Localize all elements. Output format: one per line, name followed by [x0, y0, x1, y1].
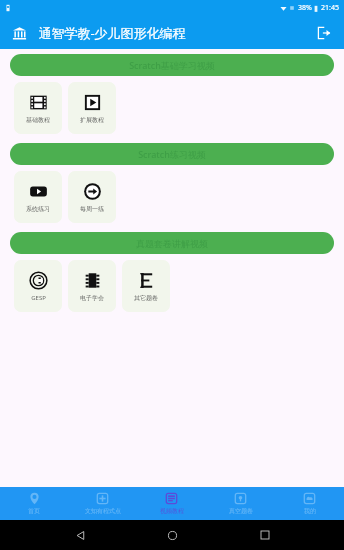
- staticText: 38%: [298, 3, 312, 13]
- staticText: 真题套卷讲解视频: [136, 238, 208, 249]
- button[interactable]: Recents: [252, 522, 278, 548]
- staticText: Scratch基础学习视频: [129, 59, 215, 71]
- staticText: 通智学教-少儿图形化编程: [38, 24, 186, 42]
- button[interactable]: Scratch练习视频: [10, 143, 334, 165]
- staticText: 系统练习: [26, 205, 50, 213]
- staticText: 真空题卷: [229, 507, 253, 515]
- staticText: 我的: [304, 507, 316, 515]
- staticText: Scratch练习视频: [138, 148, 206, 160]
- button[interactable]: 文知有程式点: [68, 492, 137, 515]
- button[interactable]: 我的: [275, 492, 344, 515]
- staticText: 每周一练: [80, 205, 104, 213]
- staticText: GESP: [31, 294, 46, 302]
- button[interactable]: 每周一练: [68, 171, 116, 223]
- button[interactable]: Menu: [8, 22, 30, 44]
- button[interactable]: 电子学会: [68, 260, 116, 312]
- staticText: 其它题卷: [134, 294, 158, 302]
- button[interactable]: 视频教程: [137, 492, 206, 515]
- staticText: 21:45: [321, 3, 339, 13]
- button[interactable]: 真题套卷讲解视频: [10, 232, 334, 254]
- button[interactable]: GESP: [14, 260, 62, 312]
- button[interactable]: 其它题卷: [122, 260, 170, 312]
- button[interactable]: Scratch基础学习视频: [10, 54, 334, 76]
- button[interactable]: Back: [67, 522, 93, 548]
- button[interactable]: Home: [159, 522, 185, 548]
- button[interactable]: 基础教程: [14, 82, 62, 134]
- button[interactable]: Logout: [312, 21, 336, 45]
- staticText: 电子学会: [80, 294, 104, 302]
- staticText: 视频教程: [160, 507, 184, 515]
- button[interactable]: 首页: [0, 492, 68, 515]
- staticText: 首页: [28, 507, 40, 515]
- button[interactable]: 真空题卷: [206, 492, 275, 515]
- button[interactable]: 扩展教程: [68, 82, 116, 134]
- staticText: 基础教程: [26, 116, 50, 124]
- staticText: 文知有程式点: [85, 507, 121, 515]
- button[interactable]: 系统练习: [14, 171, 62, 223]
- staticText: 扩展教程: [80, 116, 104, 124]
